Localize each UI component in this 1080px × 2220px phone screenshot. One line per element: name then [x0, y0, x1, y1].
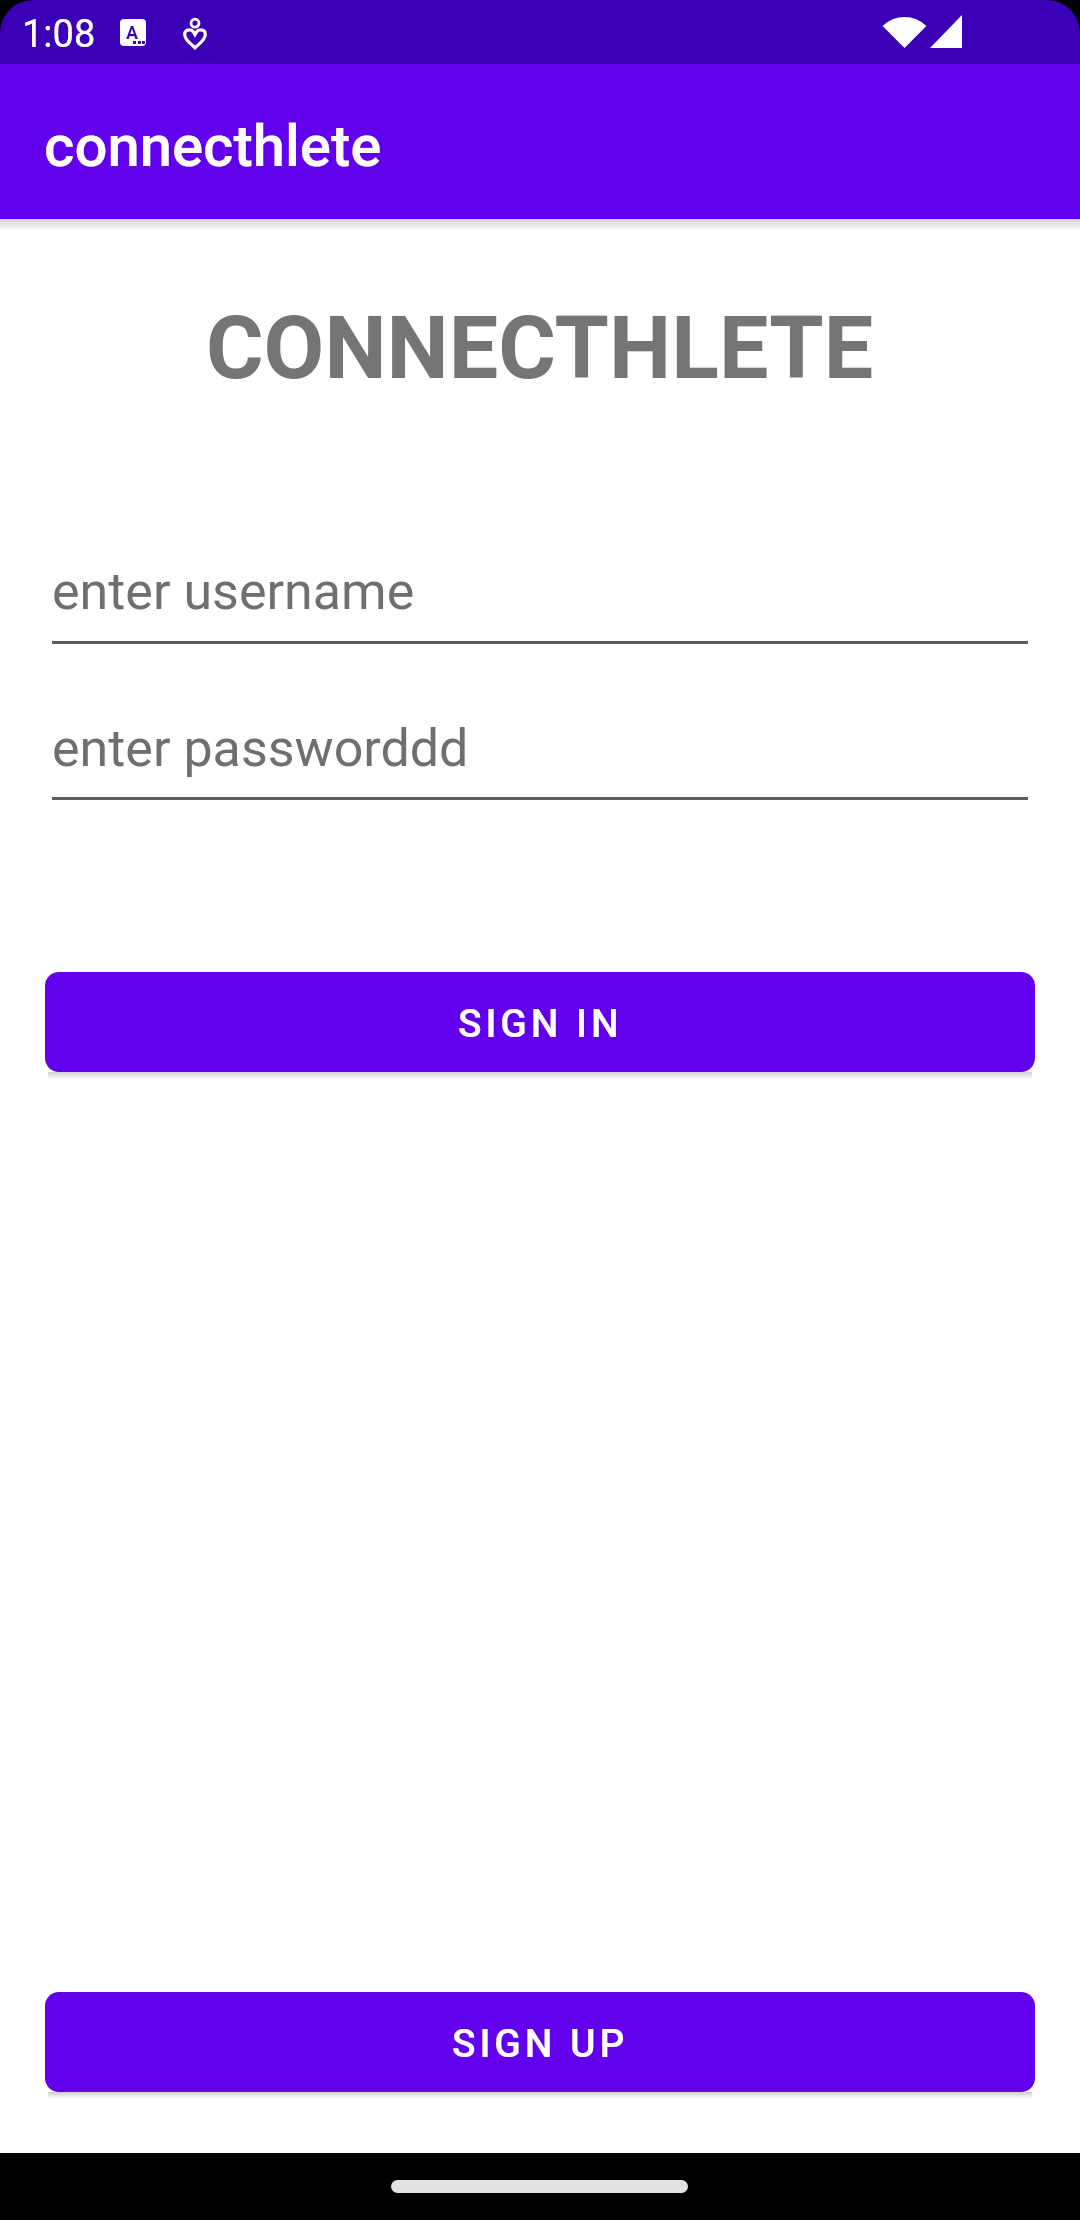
staticText: CONNECTHLETE — [206, 296, 874, 399]
staticText: A — [126, 22, 139, 43]
button[interactable]: enter passworddd — [52, 708, 1028, 800]
staticText: 1:08 — [22, 12, 96, 57]
staticText: connecthlete — [44, 112, 382, 180]
staticText: SIGN UP — [452, 2021, 629, 2067]
button[interactable]: SIGN UP — [45, 1992, 1035, 2092]
button[interactable]: SIGN IN — [45, 972, 1035, 1072]
staticText: enter username — [52, 561, 415, 622]
button[interactable]: enter username — [52, 552, 1028, 644]
staticText: enter passworddd — [52, 718, 469, 779]
staticText: SIGN IN — [458, 1001, 623, 1047]
